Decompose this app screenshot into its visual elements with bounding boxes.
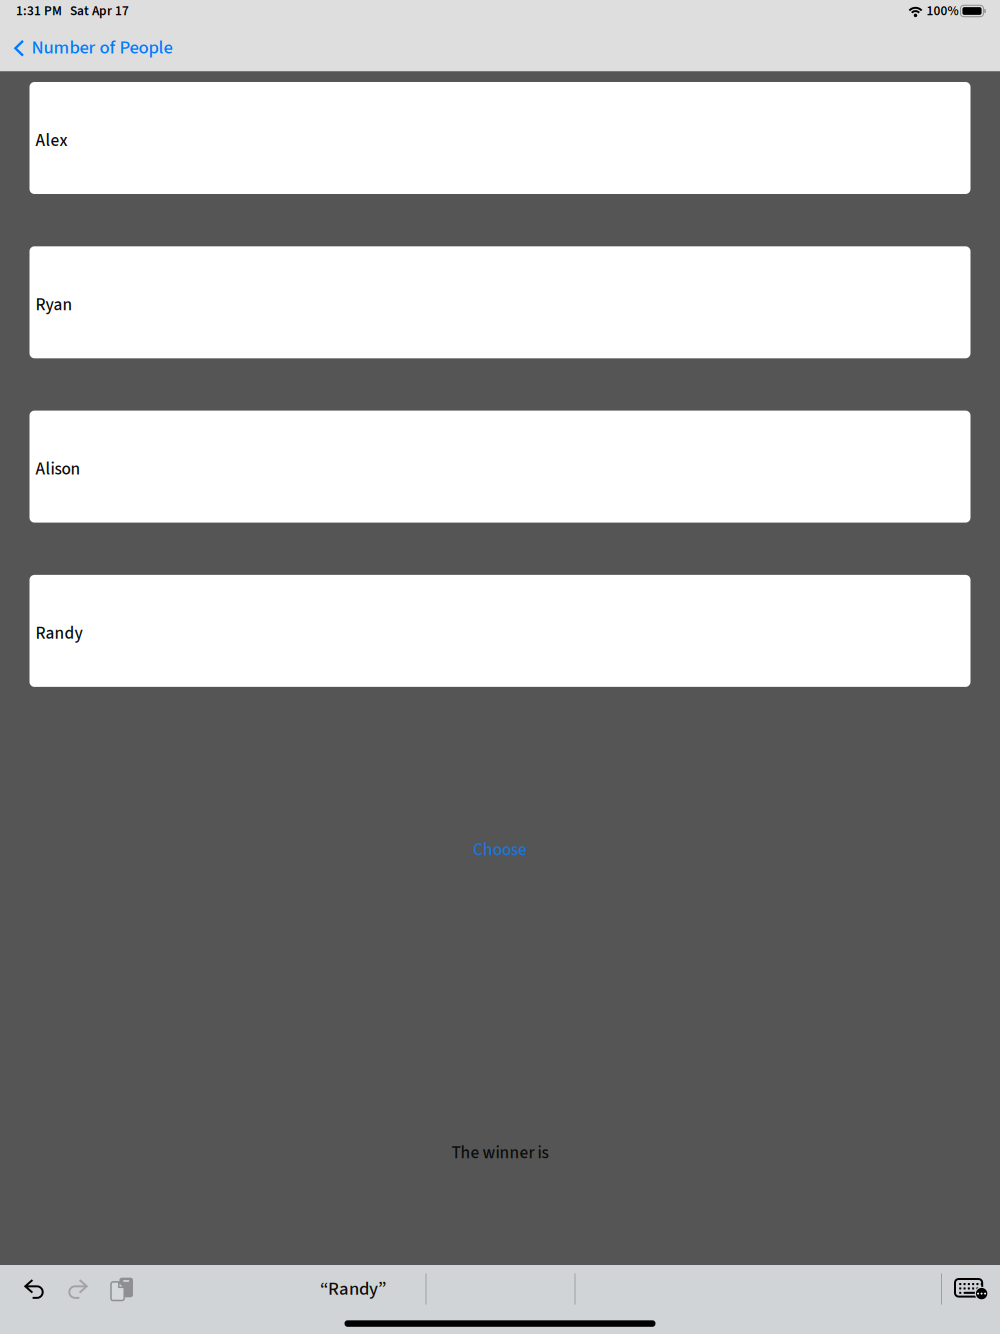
button[interactable]: Alex: [29, 82, 970, 194]
staticText: 100%: [926, 2, 958, 20]
staticText: Alex: [35, 128, 67, 153]
button[interactable]: “Randy”: [280, 1265, 425, 1313]
staticText: 1:31 PM: [16, 2, 62, 20]
button[interactable]: Choose: [440, 841, 560, 859]
button[interactable]: Randy: [29, 575, 970, 687]
button[interactable]: Undo: [12, 1265, 56, 1313]
staticText: Alison: [35, 457, 80, 481]
button[interactable]: Number of People: [0, 22, 184, 69]
staticText: Randy: [35, 621, 82, 645]
staticText: Ryan: [35, 293, 72, 317]
button[interactable]: Hide Keyboard: [949, 1265, 993, 1313]
staticText: Number of People: [31, 35, 172, 61]
button[interactable]: Paste: [100, 1265, 144, 1313]
button[interactable]: Redo: [56, 1265, 100, 1313]
staticText: “Randy”: [320, 1276, 386, 1302]
button[interactable]: Alison: [29, 411, 970, 523]
staticText: Sat Apr 17: [70, 2, 129, 20]
staticText: The winner is: [451, 1141, 548, 1165]
staticText: Choose: [473, 838, 527, 862]
button[interactable]: Ryan: [29, 246, 970, 358]
